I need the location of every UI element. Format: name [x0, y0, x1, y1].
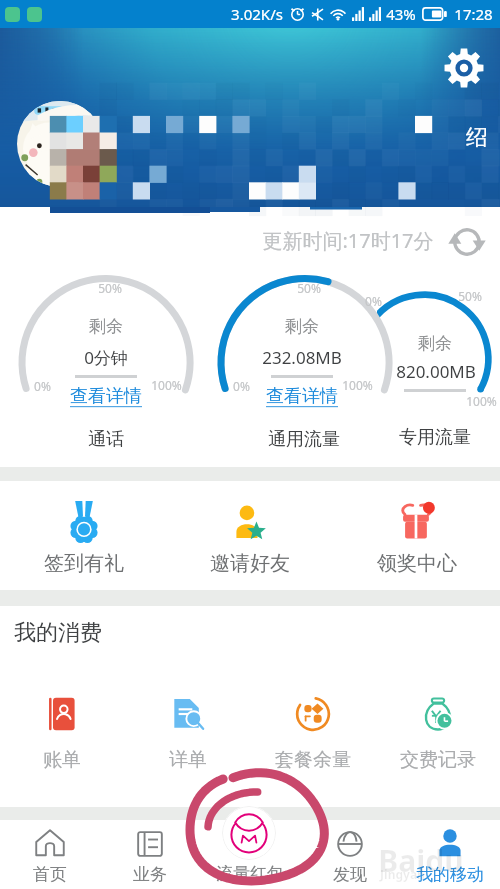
staticText: 通用流量	[268, 428, 340, 451]
button[interactable]: 我的移动	[400, 820, 500, 889]
button[interactable]: 流量红包	[200, 806, 300, 889]
staticText: 更新时间:17时17分	[262, 227, 434, 254]
button[interactable]: 签到有礼	[26, 485, 142, 583]
button[interactable]: 套餐余量	[256, 686, 370, 782]
staticText: 邀请好友	[210, 551, 290, 576]
button[interactable]: 查看详情	[70, 385, 142, 408]
staticText: 820.00MB	[396, 360, 476, 383]
staticText: Jingyan	[380, 866, 425, 882]
staticText: 100%	[342, 377, 373, 393]
staticText: 剩余	[89, 316, 123, 337]
staticText: 签到有礼	[44, 551, 124, 576]
staticText: 我的移动	[416, 864, 484, 885]
button[interactable]: 领奖中心	[359, 485, 475, 583]
staticText: Baidu	[378, 840, 464, 881]
staticText: 交费记录	[400, 748, 476, 772]
staticText: 剩余	[285, 316, 319, 337]
staticText: 绍	[466, 124, 488, 152]
staticText: 100%	[151, 377, 182, 393]
staticText: 首页	[33, 864, 67, 885]
staticText: 流量红包	[216, 863, 284, 884]
staticText: 专用流量	[399, 426, 471, 449]
button[interactable]: 交费记录	[381, 686, 495, 782]
staticText: 232.08MB	[262, 346, 342, 369]
staticText: 0分钟	[84, 346, 128, 369]
staticText: 业务	[133, 864, 167, 885]
button[interactable]: 首页	[0, 820, 100, 889]
button[interactable]: 流量红包	[222, 806, 276, 860]
staticText: 0%	[34, 378, 51, 394]
button[interactable]: 发现	[300, 820, 400, 889]
staticText: 43%	[386, 4, 416, 24]
button[interactable]: 查看详情	[266, 385, 338, 408]
staticText: 套餐余量	[275, 748, 351, 772]
staticText: 详单	[169, 748, 207, 772]
button[interactable]: Settings	[443, 47, 485, 89]
staticText: 3.02K/s	[231, 4, 283, 24]
staticText: 100%	[466, 393, 497, 409]
staticText: 通话	[88, 428, 124, 451]
staticText: 50%	[98, 280, 122, 296]
staticText: 领奖中心	[377, 551, 457, 576]
button[interactable]: Refresh	[448, 223, 486, 261]
button[interactable]: Profile photo	[17, 101, 103, 187]
staticText: 发现	[333, 864, 367, 885]
staticText: 0%	[233, 378, 250, 394]
staticText: 剩余	[418, 333, 452, 354]
staticText: 17:28	[454, 4, 493, 24]
staticText: 我的消费	[14, 619, 102, 647]
button[interactable]: 详单	[131, 686, 245, 782]
button[interactable]: 业务	[100, 820, 200, 889]
button[interactable]: 账单	[5, 686, 119, 782]
staticText: 账单	[43, 748, 81, 772]
staticText: 50%	[458, 288, 482, 304]
staticText: 50%	[297, 280, 321, 296]
staticText: 0%	[365, 293, 382, 309]
button[interactable]: 邀请好友	[192, 485, 308, 583]
